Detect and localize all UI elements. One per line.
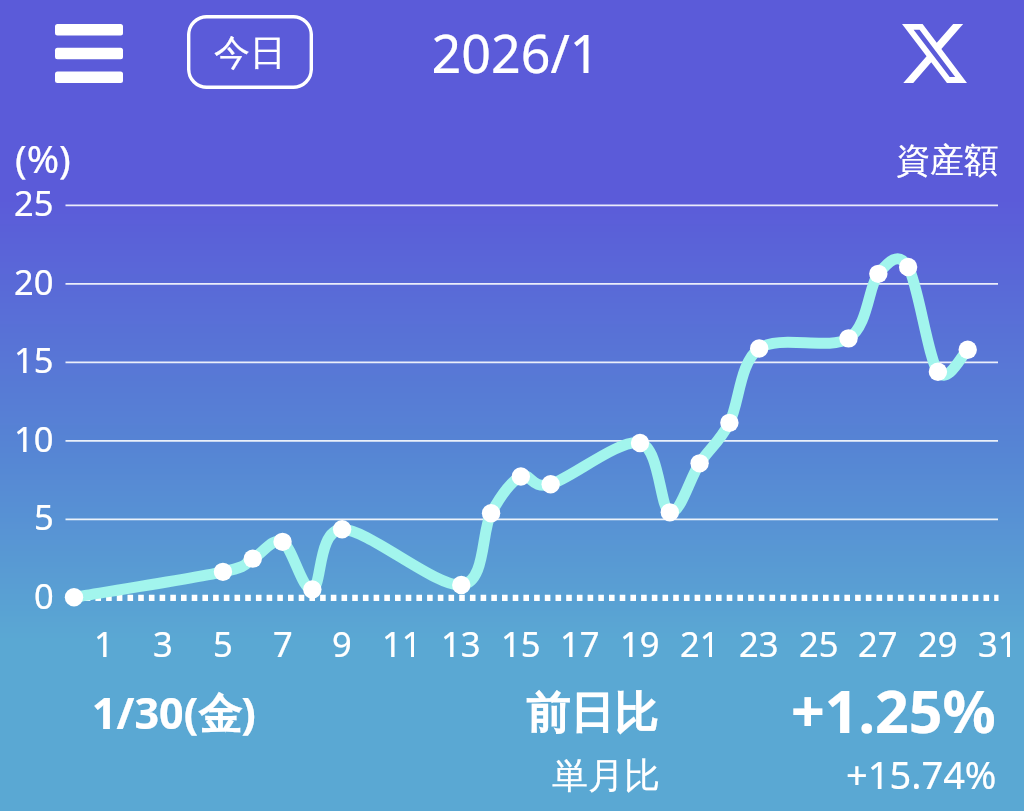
staticText: 25	[14, 179, 54, 226]
staticText: 19	[620, 620, 660, 667]
staticText: 資産額	[896, 139, 998, 182]
button[interactable]: Share on X	[886, 9, 982, 97]
staticText: 23	[739, 620, 779, 667]
staticText: (%)	[15, 131, 71, 184]
staticText: +15.74%	[846, 748, 997, 800]
staticText: 15	[14, 336, 54, 383]
staticText: 15	[501, 620, 541, 667]
staticText: +1.25%	[791, 670, 996, 750]
staticText: 3	[153, 620, 173, 667]
staticText: 1	[94, 620, 114, 667]
staticText: 9	[332, 620, 352, 667]
staticText: 0	[34, 572, 54, 619]
staticText: 27	[858, 620, 898, 667]
staticText: 29	[918, 620, 958, 667]
staticText: 今日	[214, 30, 286, 75]
staticText: 7	[273, 620, 293, 667]
staticText: 25	[799, 620, 839, 667]
staticText: 1/30(金)	[92, 683, 256, 742]
staticText: 31	[978, 620, 1018, 667]
button[interactable]: Menu	[40, 12, 137, 94]
staticText: 単月比	[552, 753, 660, 798]
staticText: 11	[382, 620, 422, 667]
staticText: 10	[14, 415, 54, 462]
staticText: 13	[441, 620, 481, 667]
staticText: 5	[213, 620, 233, 667]
staticText: 前日比	[526, 686, 658, 741]
staticText: 2026/1	[431, 17, 600, 88]
staticText: 21	[680, 620, 720, 667]
staticText: 20	[14, 258, 54, 305]
staticText: 17	[560, 620, 600, 667]
button[interactable]: 今日	[187, 15, 313, 89]
staticText: 5	[34, 493, 54, 540]
